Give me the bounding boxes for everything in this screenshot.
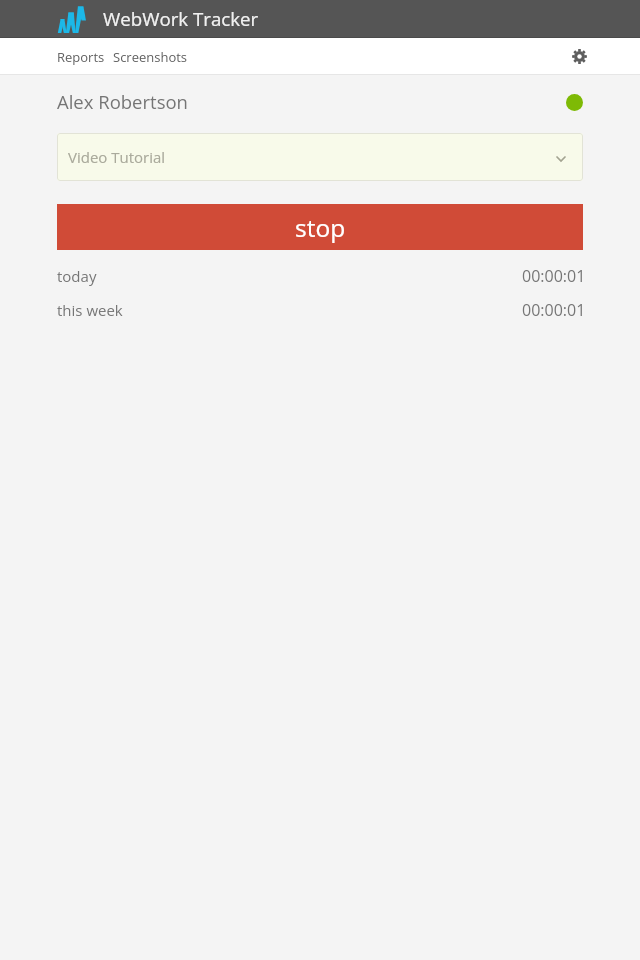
staticText: Reports xyxy=(57,48,105,66)
button[interactable]: Reports xyxy=(57,38,105,75)
staticText: 00:00:01 xyxy=(522,265,586,287)
button[interactable]: Settings xyxy=(564,41,594,71)
button[interactable]: stop xyxy=(57,204,583,250)
staticText: 00:00:01 xyxy=(522,299,586,321)
staticText: Alex Robertson xyxy=(57,89,188,114)
staticText: Screenshots xyxy=(113,48,188,66)
staticText: today xyxy=(57,266,97,286)
staticText: this week xyxy=(57,300,123,320)
button[interactable]: today xyxy=(0,259,640,293)
button[interactable]: Video Tutorial xyxy=(57,133,583,181)
staticText: stop xyxy=(295,211,346,244)
button[interactable]: Screenshots xyxy=(113,38,188,75)
button[interactable]: this week xyxy=(0,293,640,327)
staticText: Video Tutorial xyxy=(68,147,166,167)
staticText: WebWork Tracker xyxy=(103,6,259,31)
